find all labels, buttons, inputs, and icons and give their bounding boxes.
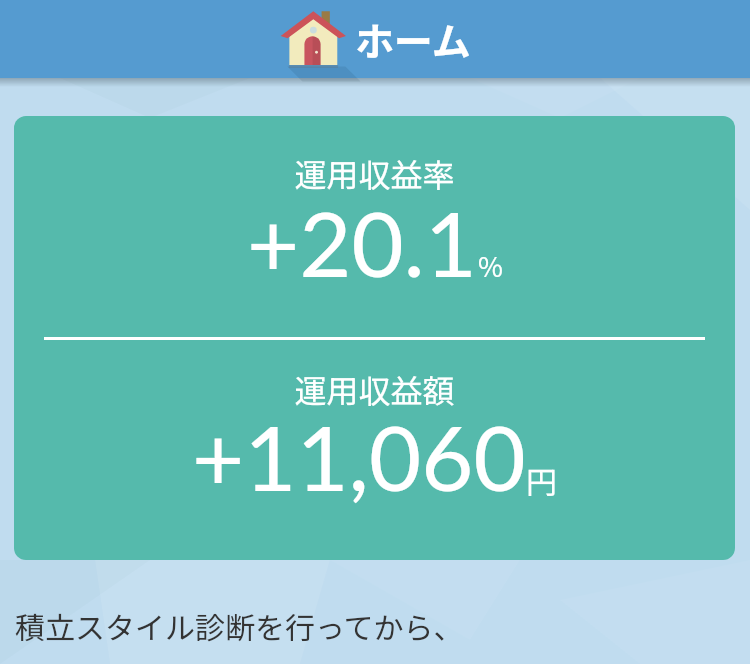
- staticText: 積立スタイル診断を行ってから、: [15, 604, 464, 647]
- staticText: 運用収益額: [294, 366, 455, 412]
- staticText: 運用収益率: [294, 150, 455, 196]
- button[interactable]: Home: [280, 0, 471, 78]
- staticText: ホーム: [355, 11, 471, 67]
- staticText: +11,060: [192, 402, 526, 510]
- button[interactable]: 運用収益率: [14, 116, 735, 560]
- staticText: 円: [526, 458, 557, 503]
- staticText: +20.1: [247, 188, 478, 296]
- staticText: %: [478, 246, 503, 285]
- other: Home: [280, 5, 346, 71]
